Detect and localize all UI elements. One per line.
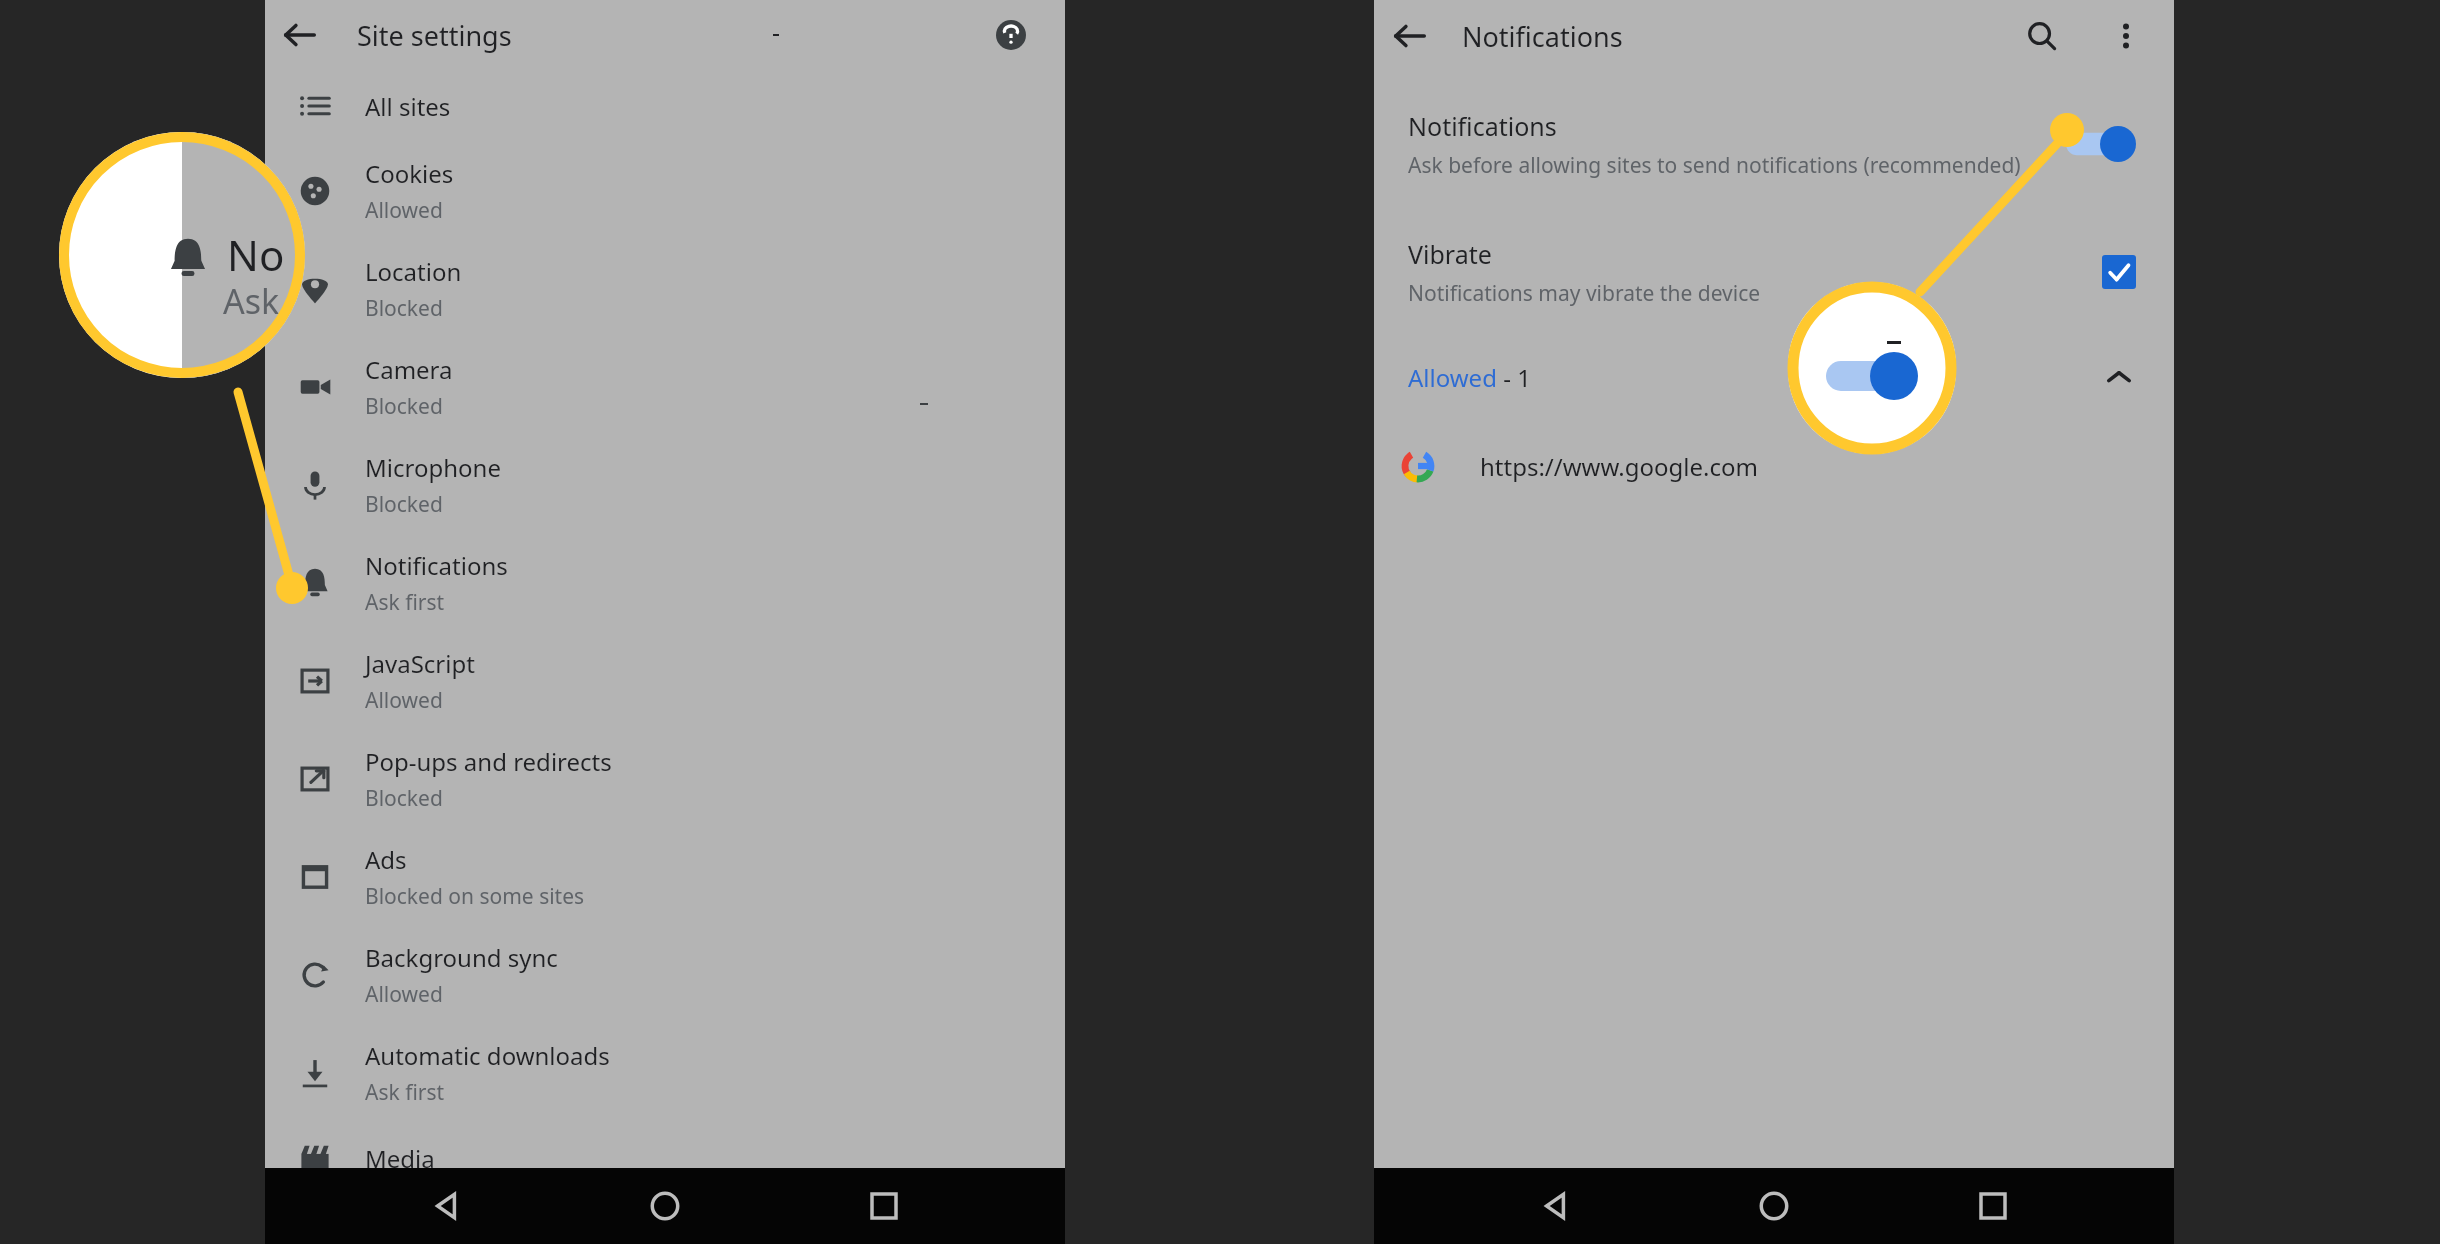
staticText: Site settings [357,17,512,54]
staticText: Allowed [365,686,443,715]
button[interactable]: Notifications [265,534,1065,632]
button[interactable]: Back [265,0,335,70]
staticText: Allowed [365,196,443,225]
button[interactable]: Camera [265,338,1065,436]
button[interactable]: Back [408,1168,484,1244]
button[interactable]: Background sync [265,926,1065,1024]
button[interactable]: Cookies [265,142,1065,240]
staticText: https://www.google.com [1480,450,1758,483]
staticText: Ask [223,278,280,324]
staticText: Automatic downloads [365,1039,610,1072]
staticText: Ask before allowing sites to send notifi… [1408,151,2021,180]
staticText: Notifications [365,549,508,582]
staticText: Location [365,255,462,288]
button[interactable]: Location [265,240,1065,338]
button[interactable]: Automatic downloads [265,1024,1065,1122]
staticText: Cookies [365,157,454,190]
button[interactable]: Home [627,1168,703,1244]
staticText: Notifications [1408,109,1557,143]
staticText: Blocked [365,784,443,813]
staticText: Camera [365,353,453,386]
staticText: Allowed [365,980,443,1009]
staticText: Blocked on some sites [365,882,585,911]
staticText: Ads [365,843,407,876]
button[interactable]: Home [1736,1168,1812,1244]
staticText: Microphone [365,451,501,484]
button[interactable]: Back [1374,0,1446,72]
button[interactable]: Notifications [1374,96,2174,192]
staticText: Ask first [365,1078,445,1107]
button[interactable]: JavaScript [265,632,1065,730]
button[interactable]: https://www.google.com [1374,428,2174,504]
staticText: No [227,226,285,283]
button[interactable]: Pop-ups and redirects [265,730,1065,828]
staticText: JavaScript [365,647,475,680]
staticText: Blocked [365,490,443,519]
staticText: Blocked [365,294,443,323]
button[interactable]: Recents [1955,1168,2031,1244]
button[interactable]: Help [979,3,1043,67]
button[interactable]: Microphone [265,436,1065,534]
staticText: Notifications [1462,18,1623,55]
staticText: Media [365,1142,435,1175]
staticText: - 1 [1497,361,1531,394]
staticText: Ask first [365,588,445,617]
button[interactable]: Media [265,1122,1065,1194]
staticText: Vibrate [1408,237,1492,271]
staticText: Pop-ups and redirects [365,745,612,778]
button[interactable]: Back [1517,1168,1593,1244]
staticText: Allowed [1408,361,1497,394]
button[interactable]: Ads [265,828,1065,926]
button[interactable]: Recents [846,1168,922,1244]
button[interactable]: More options [2094,4,2158,68]
button[interactable]: All sites [265,70,1065,142]
button[interactable]: Vibrate [1374,224,2174,320]
staticText: All sites [365,90,451,123]
button[interactable]: Allowed [1374,342,2174,412]
staticText: Background sync [365,941,558,974]
button[interactable]: Search [2010,4,2074,68]
staticText: Blocked [365,392,443,421]
staticText: Notifications may vibrate the device [1408,279,1761,308]
